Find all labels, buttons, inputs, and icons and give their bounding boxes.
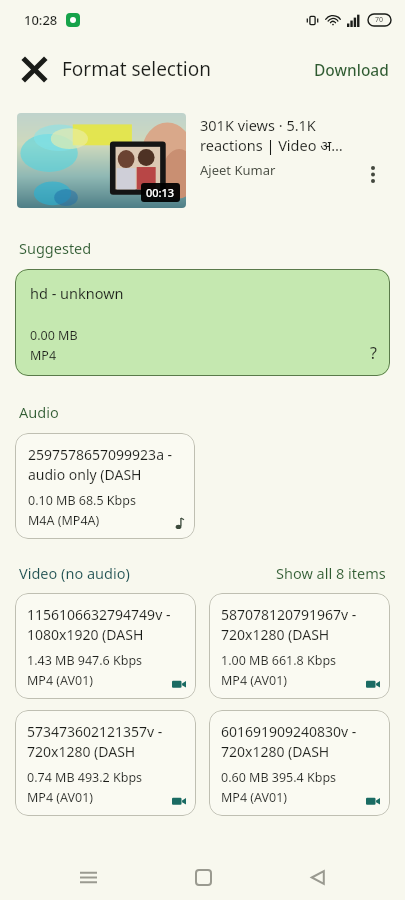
button[interactable]: Back	[291, 855, 343, 900]
staticText: Ajeet Kumar	[200, 161, 276, 179]
button[interactable]: 00:13	[17, 113, 388, 208]
staticText: 1156106632794749v - 1080x1920 (DASH	[27, 605, 186, 645]
staticText: Video (no audio)	[19, 563, 130, 583]
staticText: Download	[314, 59, 389, 80]
staticText: 70	[375, 15, 384, 25]
staticText: 0.10 MB 68.5 Kbps	[28, 492, 136, 509]
staticText: 10:28	[24, 11, 58, 29]
button[interactable]: 587078120791967v - 720x1280 (DASH	[209, 593, 390, 699]
staticText: ?	[370, 342, 377, 364]
staticText: 0.00 MB	[30, 327, 78, 344]
staticText: M4A (MP4A)	[28, 512, 100, 529]
button[interactable]: 573473602121357v - 720x1280 (DASH	[15, 710, 196, 816]
button[interactable]: Show all 8 items	[276, 563, 386, 583]
staticText: Suggested	[19, 238, 92, 258]
button[interactable]: 1156106632794749v - 1080x1920 (DASH	[15, 593, 196, 699]
staticText: 00:13	[146, 185, 175, 200]
staticText: Format selection	[62, 56, 211, 82]
staticText: 0.60 MB 395.4 Kbps	[221, 769, 337, 786]
staticText: MP4 (AV01)	[221, 789, 288, 806]
button[interactable]: Recent apps	[62, 855, 114, 900]
button[interactable]: Home	[177, 855, 229, 900]
staticText: 2597578657099923a - audio only (DASH	[28, 445, 184, 485]
staticText: Show all 8 items	[276, 563, 386, 583]
staticText: MP4	[30, 347, 57, 364]
button[interactable]: 601691909240830v - 720x1280 (DASH	[209, 710, 390, 816]
button[interactable]: hd - unknown	[15, 269, 390, 376]
staticText: MP4 (AV01)	[27, 789, 94, 806]
button[interactable]: More options	[358, 159, 388, 189]
button[interactable]: 2597578657099923a - audio only (DASH	[15, 433, 195, 539]
staticText: 601691909240830v - 720x1280 (DASH	[221, 722, 380, 762]
staticText: MP4 (AV01)	[27, 672, 94, 689]
staticText: 573473602121357v - 720x1280 (DASH	[27, 722, 186, 762]
staticText: 1.00 MB 661.8 Kbps	[221, 652, 337, 669]
button[interactable]: Close	[12, 47, 56, 91]
staticText: 1.43 MB 947.6 Kbps	[27, 652, 143, 669]
staticText: 0.74 MB 493.2 Kbps	[27, 769, 143, 786]
staticText: Audio	[19, 402, 59, 422]
staticText: MP4 (AV01)	[221, 672, 288, 689]
staticText: 301K views · 5.1K reactions | Video अच्छ…	[200, 115, 358, 156]
button[interactable]: Download	[298, 49, 405, 90]
staticText: hd - unknown	[30, 283, 124, 303]
staticText: 587078120791967v - 720x1280 (DASH	[221, 605, 380, 645]
